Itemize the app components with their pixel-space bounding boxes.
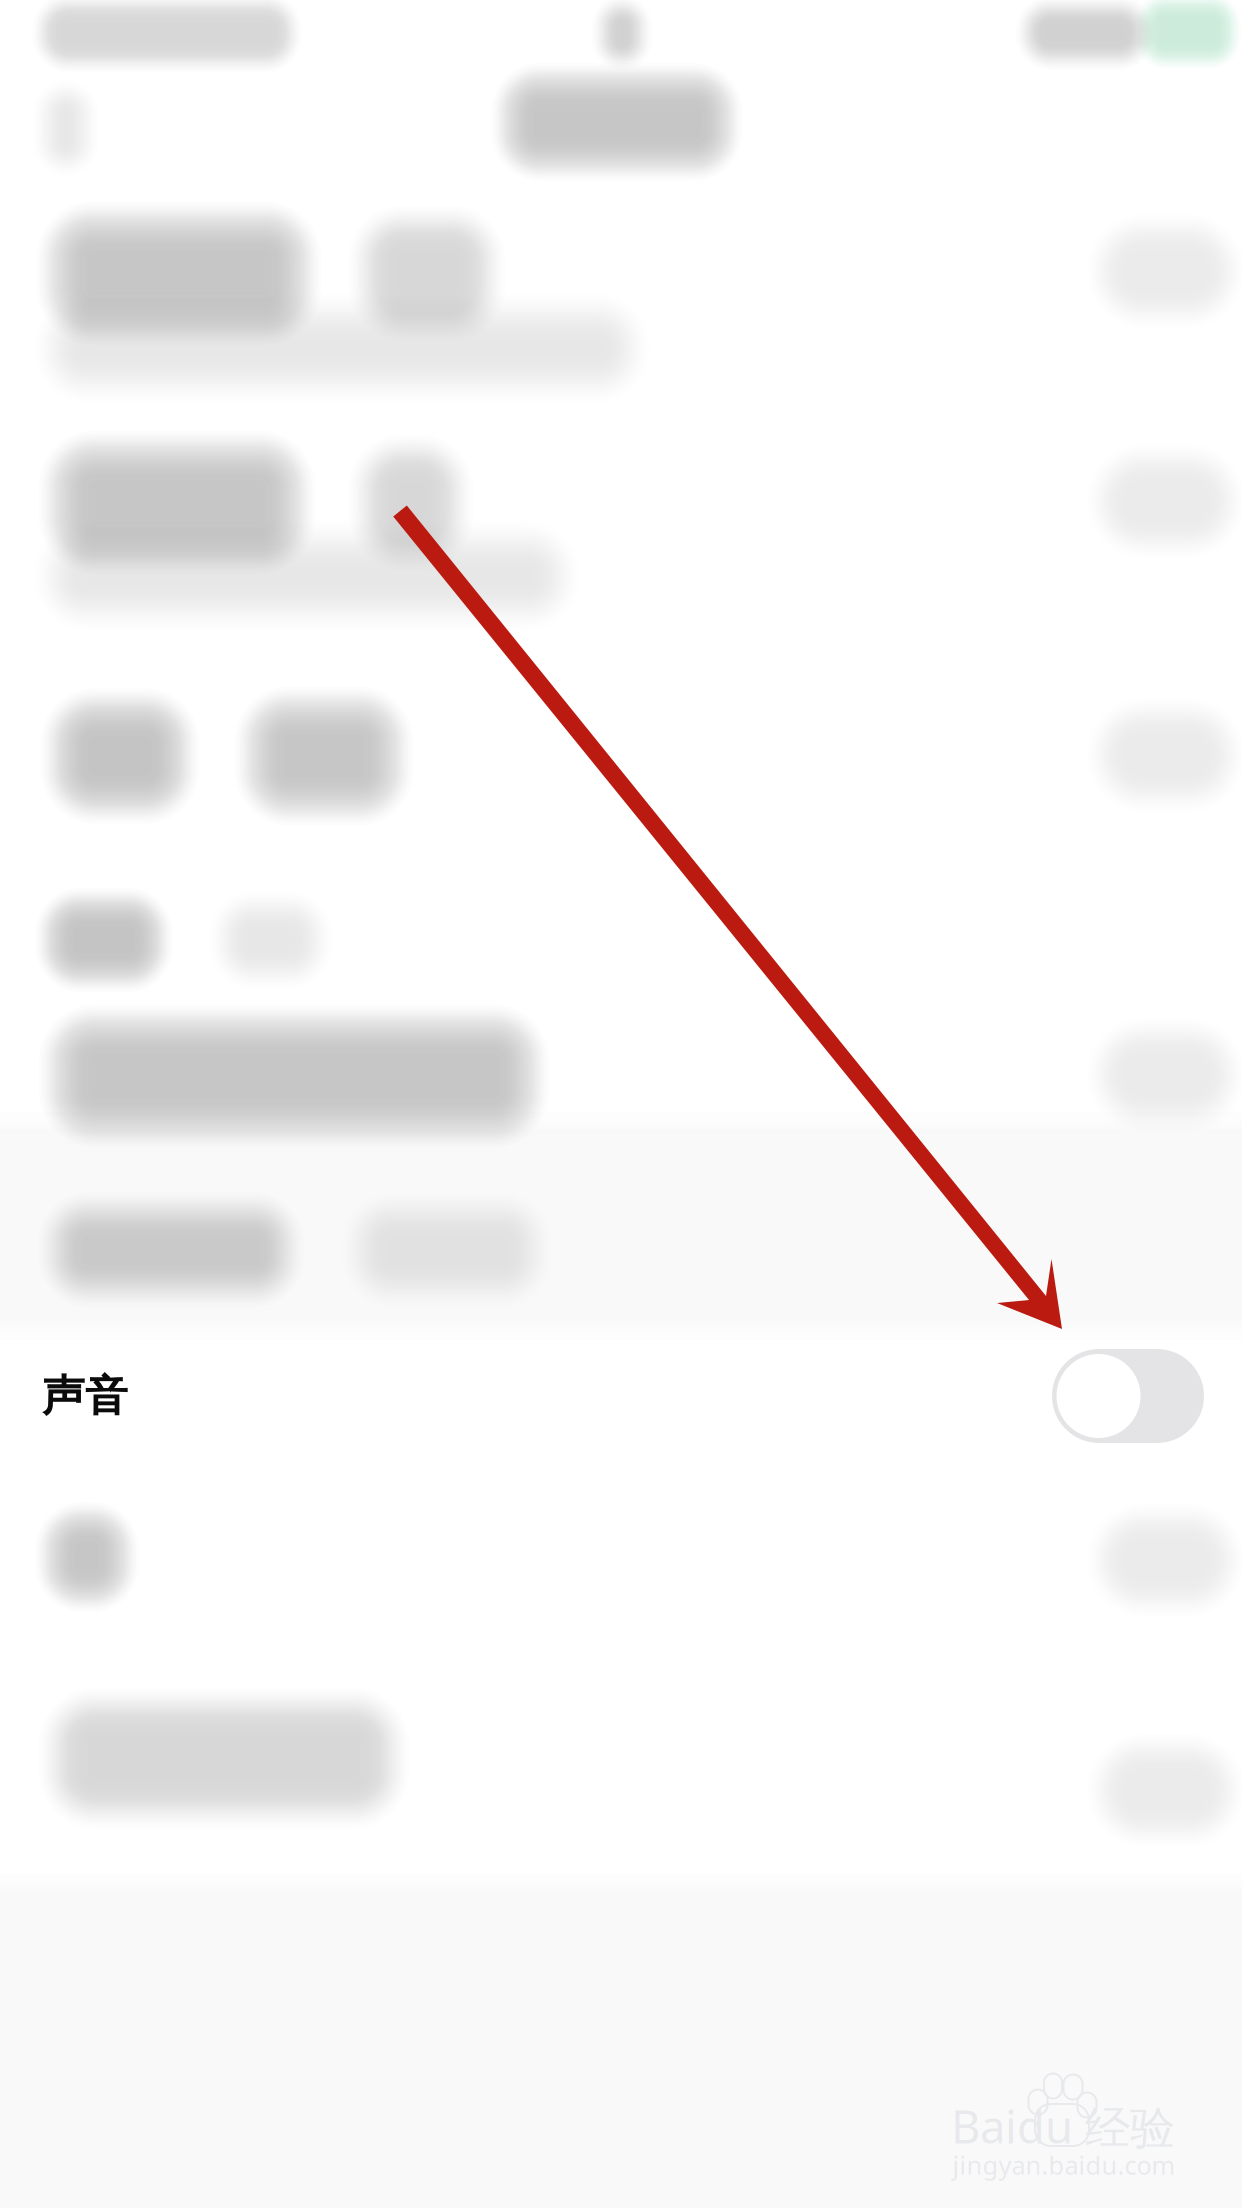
button[interactable]: 声音 bbox=[0, 1301, 1242, 1491]
staticText: Baidu 经验 bbox=[951, 2096, 1175, 2156]
staticText: jingyan.baidu.com bbox=[952, 2148, 1175, 2182]
staticText: 声音 bbox=[42, 1370, 128, 1422]
